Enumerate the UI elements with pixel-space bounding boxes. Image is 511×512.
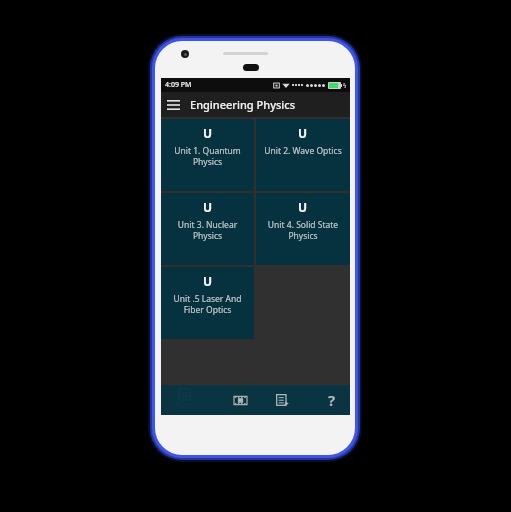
button[interactable]: U [161, 119, 254, 191]
button[interactable]: Open navigation menu [161, 92, 186, 117]
button[interactable]: ? [313, 385, 350, 415]
button[interactable]: U [161, 267, 254, 339]
staticText: Unit 1. Quantum Physics [165, 145, 250, 167]
staticText: U [298, 125, 308, 141]
staticText: Unit 3. Nuclear Physics [165, 219, 250, 241]
staticText: Engineering Physics [190, 97, 296, 112]
staticText: U [298, 199, 308, 215]
staticText: ϟ [343, 81, 347, 89]
staticText: Unit .5 Laser And Fiber Optics [165, 293, 250, 315]
staticText: Unit 2. Wave Optics [260, 145, 346, 157]
button[interactable]: U [256, 193, 350, 265]
staticText: Unit 4. Solid State Physics [260, 219, 346, 241]
staticText: ? [328, 390, 336, 410]
staticText: U [203, 125, 213, 141]
button[interactable]: U [161, 193, 254, 265]
staticText: U [203, 273, 213, 289]
staticText: 4:09 PM [165, 80, 192, 90]
button[interactable]: U [256, 119, 350, 191]
button[interactable]: Videos [229, 385, 251, 415]
button[interactable]: Notes [271, 385, 293, 415]
staticText: U [203, 199, 213, 215]
